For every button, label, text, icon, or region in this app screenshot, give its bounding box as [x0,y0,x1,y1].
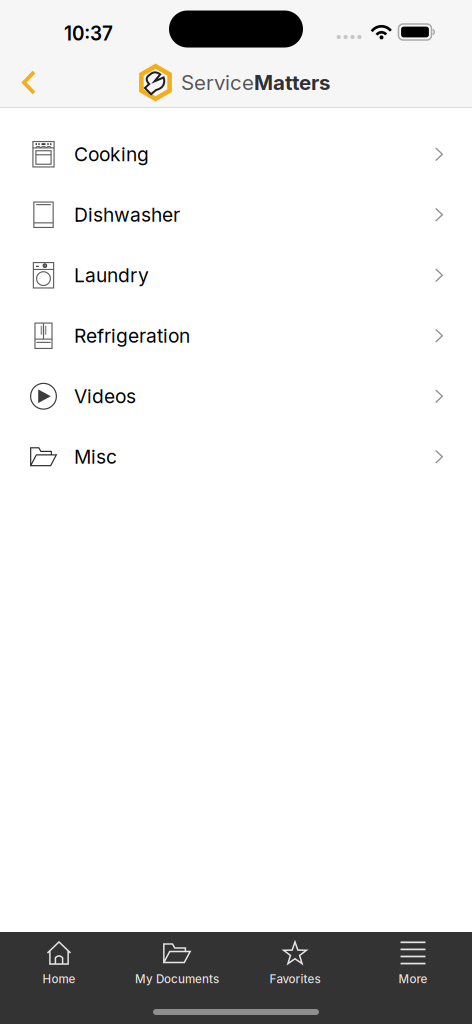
staticText: Favorites [269,972,320,986]
button[interactable]: Back [7,60,51,104]
staticText: Home [42,972,75,986]
button[interactable]: Misc [0,426,472,487]
button[interactable]: Cooking [0,124,472,184]
staticText: Refrigeration [74,324,190,347]
staticText: Matters [254,70,330,95]
button[interactable]: Favorites [236,932,354,986]
staticText: Cooking [74,143,149,166]
button[interactable]: Laundry [0,245,472,305]
button[interactable]: More [354,932,472,986]
staticText: 10:37 [64,22,113,45]
button[interactable]: My Documents [118,932,236,986]
staticText: Laundry [74,264,149,287]
staticText: My Documents [135,972,219,986]
staticText: Videos [74,385,136,408]
button[interactable]: Refrigeration [0,305,472,366]
staticText: More [398,972,427,986]
staticText: Dishwasher [74,203,180,226]
button[interactable]: Home [0,932,118,986]
staticText: Misc [74,445,117,468]
staticText: Service [181,70,254,95]
button[interactable]: Dishwasher [0,184,472,245]
button[interactable]: Videos [0,366,472,426]
